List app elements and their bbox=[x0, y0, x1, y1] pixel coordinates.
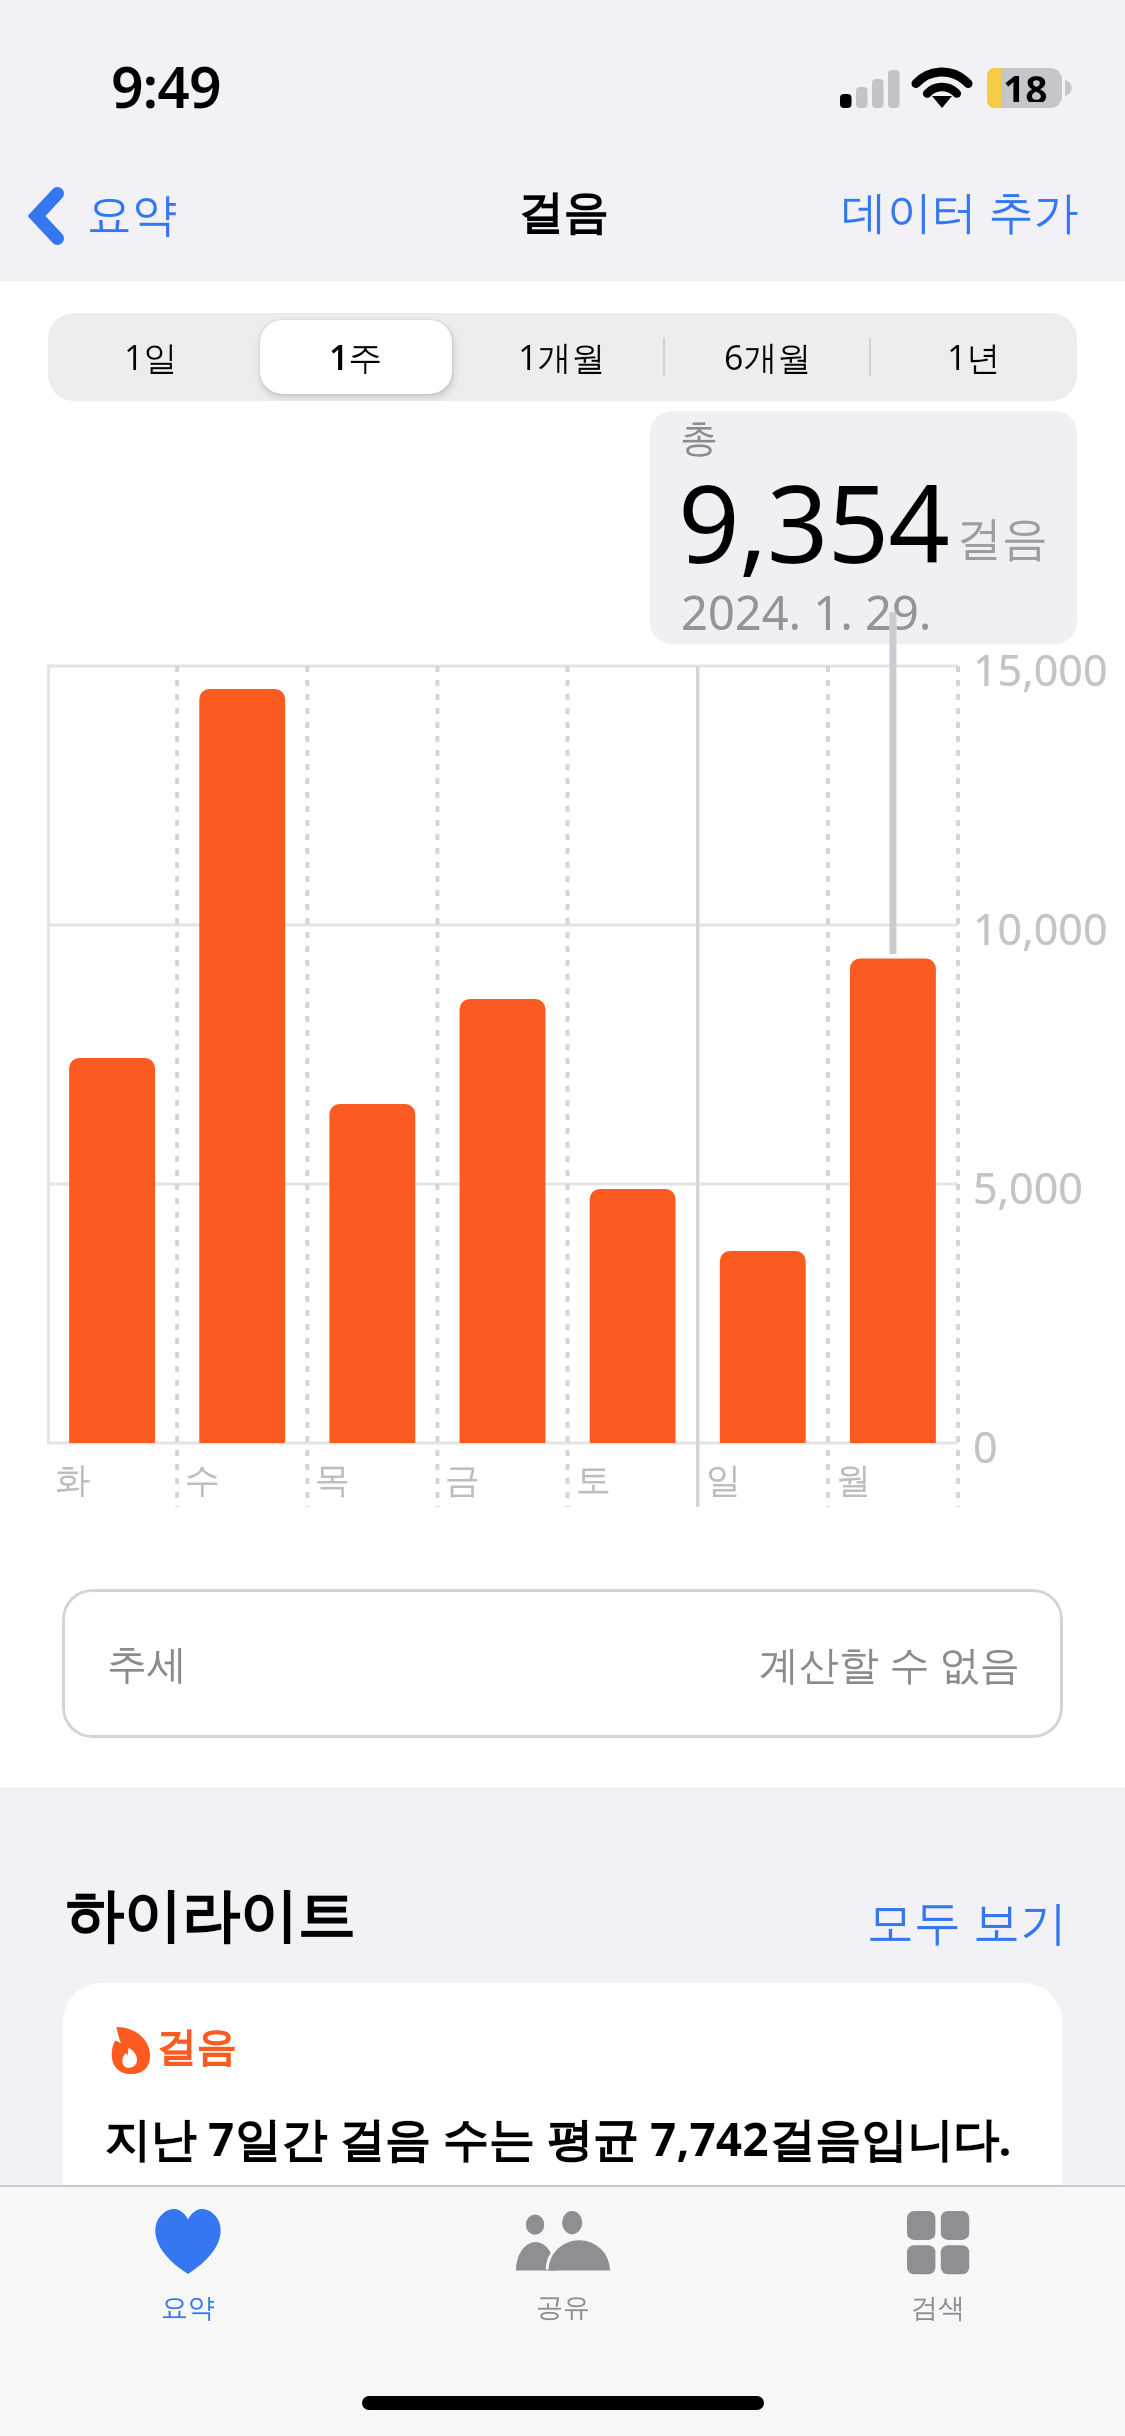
staticText: 모두 보기 bbox=[867, 1889, 1068, 1953]
staticText: 지난 7일간 걸음 수는 평균 7,742걸음입니다. bbox=[104, 2107, 1012, 2170]
staticText: 15,000 bbox=[973, 640, 1108, 699]
button[interactable]: 1개월 bbox=[466, 320, 658, 394]
staticText: 추세 bbox=[107, 1639, 187, 1689]
button[interactable]: 6개월 bbox=[672, 320, 864, 394]
staticText: 걸음 bbox=[956, 510, 1048, 568]
staticText: 데이터 추가 bbox=[842, 180, 1079, 241]
staticText: 일 bbox=[706, 1458, 741, 1502]
button[interactable]: 데이터 추가 bbox=[842, 180, 1079, 241]
staticText: 1주 bbox=[329, 334, 383, 380]
staticText: 계산할 수 없음 bbox=[759, 1636, 1020, 1691]
staticText: 6개월 bbox=[724, 334, 812, 380]
other: Sharing bbox=[516, 2205, 610, 2279]
staticText: 요약 bbox=[87, 187, 177, 244]
staticText: 0 bbox=[973, 1417, 998, 1476]
staticText: 토 bbox=[576, 1458, 611, 1502]
staticText: 검색 bbox=[911, 2291, 965, 2325]
staticText: 10,000 bbox=[973, 899, 1108, 958]
staticText: 1개월 bbox=[518, 334, 606, 380]
staticText: 18 bbox=[1003, 62, 1048, 102]
staticText: 9:49 bbox=[111, 47, 221, 125]
staticText: 1년 bbox=[947, 334, 1001, 380]
button[interactable]: 1년 bbox=[878, 320, 1070, 394]
staticText: 하이라이트 bbox=[65, 1880, 355, 1953]
staticText: 9,354 bbox=[678, 448, 950, 595]
button[interactable]: 모두 보기 bbox=[867, 1889, 1068, 1953]
button[interactable]: Browse bbox=[750, 2205, 1125, 2335]
staticText: 목 bbox=[315, 1458, 350, 1502]
button[interactable]: Summary bbox=[0, 2205, 375, 2335]
staticText: 월 bbox=[836, 1458, 871, 1502]
other: Browse bbox=[907, 2205, 969, 2279]
staticText: 총 bbox=[680, 414, 718, 462]
button[interactable]: 걸음 bbox=[63, 1983, 1062, 2293]
staticText: 화 bbox=[55, 1458, 90, 1502]
staticText: 금 bbox=[445, 1458, 480, 1502]
button[interactable]: 추세 bbox=[62, 1589, 1063, 1738]
staticText: 걸음 bbox=[156, 2022, 236, 2072]
button[interactable]: 1일 bbox=[55, 320, 246, 394]
staticText: 2024. 1. 29. bbox=[681, 580, 932, 644]
button[interactable]: 1주 bbox=[260, 320, 452, 394]
staticText: 공유 bbox=[536, 2291, 590, 2325]
staticText: 수 bbox=[185, 1458, 220, 1502]
staticText: 1일 bbox=[124, 334, 178, 380]
button[interactable]: Sharing bbox=[375, 2205, 750, 2335]
button[interactable]: 요약 bbox=[22, 179, 185, 253]
staticText: 5,000 bbox=[973, 1158, 1083, 1217]
other: Summary bbox=[154, 2205, 222, 2279]
staticText: 걸음 bbox=[518, 185, 608, 242]
staticText: 요약 bbox=[161, 2291, 215, 2325]
